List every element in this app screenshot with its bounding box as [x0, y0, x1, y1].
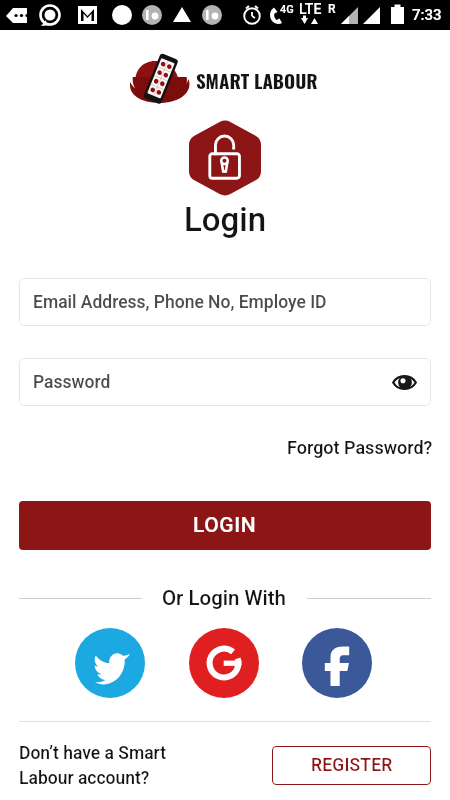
staticText: 4G — [280, 3, 294, 16]
button[interactable]: Sign in with Twitter — [75, 628, 145, 698]
button[interactable]: LOGIN — [19, 501, 431, 550]
button[interactable]: REGISTER — [272, 746, 431, 785]
staticText: Or Login With — [162, 586, 287, 610]
staticText: LTE — [299, 1, 322, 17]
button[interactable]: Email Address, Phone No, Employe ID — [19, 278, 431, 326]
staticText: R — [328, 2, 336, 16]
button[interactable]: Forgot Password? — [287, 437, 433, 458]
staticText: Email Address, Phone No, Employe ID — [33, 292, 327, 313]
staticText: LOGIN — [193, 513, 257, 538]
button[interactable]: Show password — [388, 366, 420, 398]
staticText: 7:33 — [412, 6, 442, 24]
staticText: SMART LABOUR — [196, 66, 318, 94]
staticText: REGISTER — [311, 755, 393, 776]
staticText: Password — [33, 372, 111, 393]
staticText: Don’t have a Smart Labour account? — [19, 743, 167, 788]
button[interactable]: Sign in with Google — [189, 628, 259, 698]
button[interactable]: Sign in with Facebook — [302, 628, 372, 698]
button[interactable]: Password — [19, 358, 431, 406]
staticText: Login — [184, 200, 267, 239]
